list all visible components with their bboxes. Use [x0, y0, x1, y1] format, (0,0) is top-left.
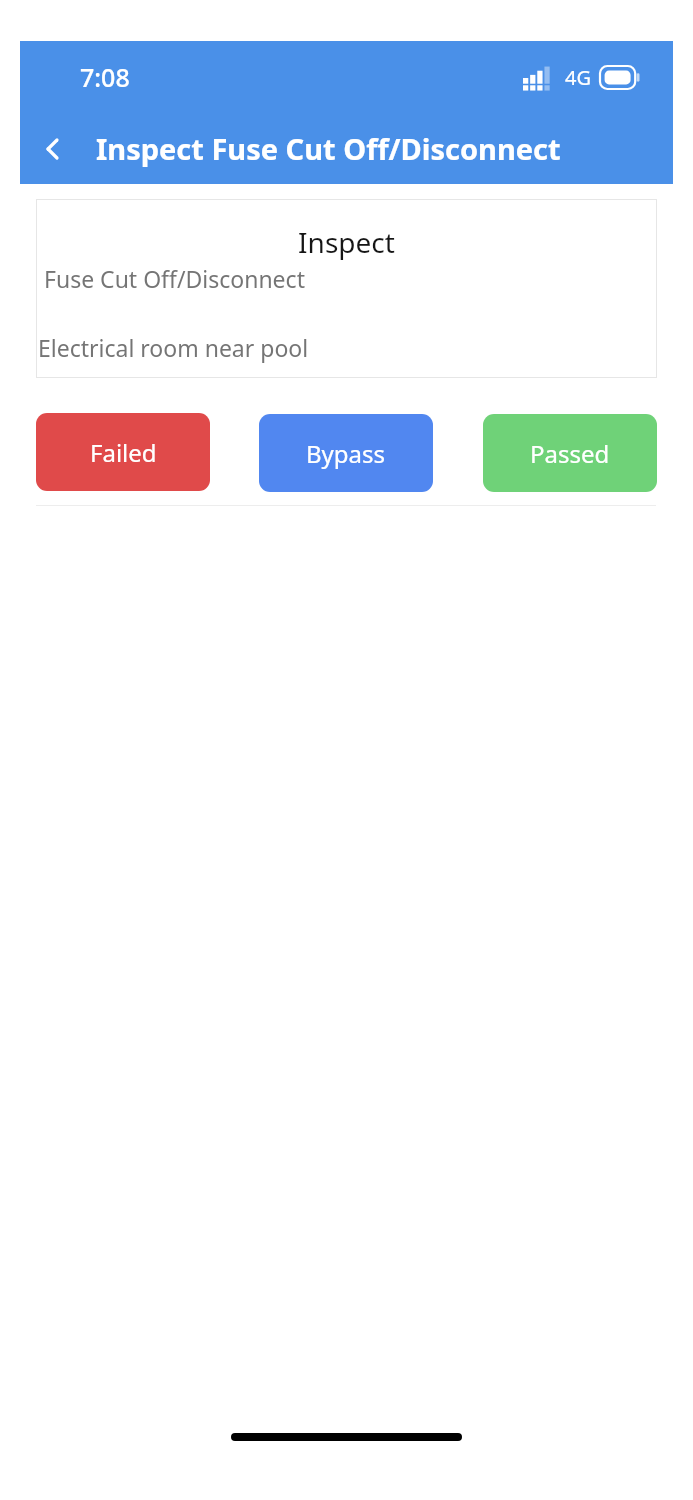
staticText: Inspect Fuse Cut Off/Disconnect [96, 129, 561, 168]
button[interactable]: Bypass [259, 414, 433, 492]
button[interactable]: Inspect [36, 199, 657, 378]
staticText: Passed [530, 437, 610, 470]
staticText: Failed [90, 436, 157, 469]
button[interactable]: Passed [483, 414, 657, 492]
button[interactable]: Failed [36, 413, 210, 491]
button[interactable]: Back [26, 121, 82, 177]
staticText: Fuse Cut Off/Disconnect [44, 263, 305, 294]
staticText: Inspect [44, 223, 649, 261]
staticText: Electrical room near pool [38, 332, 309, 363]
staticText: 7:08 [80, 60, 130, 94]
staticText: 4G [565, 64, 591, 91]
staticText: Bypass [306, 437, 386, 470]
